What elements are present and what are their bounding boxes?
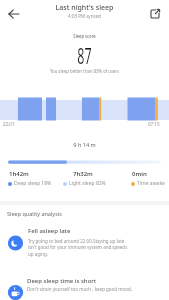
staticText: Last night's sleep bbox=[0, 3, 169, 13]
staticText: 1h42m bbox=[9, 170, 29, 178]
staticText: Try going to bed around 22:00.Staying up… bbox=[28, 238, 128, 258]
staticText: 22:01 bbox=[3, 121, 15, 127]
staticText: Light sleep 82% bbox=[69, 180, 106, 187]
staticText: Time awake bbox=[137, 180, 165, 187]
button[interactable] bbox=[147, 6, 163, 22]
staticText: Deep sleep time is short bbox=[27, 277, 97, 285]
staticText: Sleep score bbox=[20, 32, 149, 39]
staticText: 4:03 PM synced bbox=[0, 13, 169, 19]
staticText: Fell asleep late bbox=[28, 227, 71, 235]
button[interactable]: Fell asleep late bbox=[0, 225, 169, 261]
button[interactable] bbox=[4, 6, 22, 24]
staticText: 0min bbox=[132, 170, 147, 178]
staticText: You sleep better than 83% of users bbox=[13, 68, 156, 75]
staticText: 87 bbox=[35, 41, 133, 70]
staticText: Don't strain yourself too much , keep go… bbox=[27, 286, 132, 292]
staticText: 7h32m bbox=[73, 170, 93, 178]
staticText: 07:15 bbox=[148, 121, 160, 127]
staticText: 9 h 14 m bbox=[0, 141, 169, 148]
button[interactable]: Deep sleep time is short bbox=[0, 275, 169, 300]
staticText: Deep sleep 18% bbox=[14, 180, 52, 187]
staticText: Sleep quality analysis bbox=[7, 210, 62, 217]
